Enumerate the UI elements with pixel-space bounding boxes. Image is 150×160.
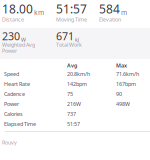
staticText: Elevation: [99, 16, 121, 23]
staticText: Total Work: [56, 41, 82, 48]
staticText: Power: [4, 100, 19, 108]
staticText: Power: [2, 47, 17, 54]
staticText: 671: [56, 29, 74, 43]
staticText: 90: [116, 90, 122, 98]
staticText: Avg: [67, 62, 77, 69]
staticText: 51:57: [56, 1, 87, 17]
staticText: km: [34, 8, 44, 17]
staticText: 51:57: [67, 120, 80, 128]
staticText: Calories: [4, 110, 23, 118]
staticText: 20.8km/h: [67, 70, 90, 78]
staticText: Cadence: [4, 90, 25, 98]
staticText: 584: [99, 1, 120, 17]
staticText: kJ: [75, 36, 79, 43]
staticText: 18.00: [2, 1, 33, 17]
staticText: Weighted Avg: [2, 41, 35, 48]
staticText: 75: [67, 90, 73, 98]
staticText: Moving Time: [56, 16, 87, 23]
staticText: m: [121, 8, 127, 17]
staticText: Elapsed Time: [4, 120, 36, 128]
staticText: Max: [116, 62, 127, 69]
staticText: 167bpm: [116, 80, 136, 88]
staticText: Speed: [4, 70, 19, 78]
staticText: 142bpm: [67, 80, 87, 88]
staticText: Rouvy: [2, 139, 17, 146]
staticText: 498W: [116, 100, 130, 108]
staticText: Distance: [2, 16, 24, 23]
staticText: Heart Rate: [4, 80, 30, 88]
staticText: 230: [2, 29, 20, 43]
staticText: 216W: [67, 100, 81, 108]
staticText: 737: [67, 110, 76, 118]
staticText: 71.6km/h: [116, 70, 139, 78]
staticText: W: [21, 36, 26, 43]
